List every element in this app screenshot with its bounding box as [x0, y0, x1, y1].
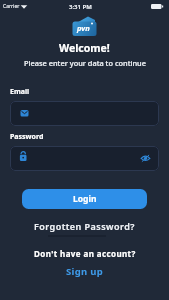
button[interactable] [10, 146, 159, 171]
staticText: Welcome! [59, 41, 110, 55]
button[interactable] [10, 101, 159, 126]
staticText: Password [10, 132, 44, 142]
staticText: 3:31 PM [69, 3, 92, 11]
staticText: Email [10, 87, 30, 97]
staticText: Please enter your data to continue [24, 58, 146, 68]
button[interactable]: Sign up [66, 265, 104, 278]
staticText: Don't have an account? [34, 248, 136, 259]
button[interactable]: Forgotten Password? [34, 220, 135, 232]
staticText: Login [73, 193, 97, 205]
button[interactable] [138, 147, 158, 170]
staticText: Carrier [3, 3, 20, 10]
button[interactable]: Login [22, 189, 147, 209]
staticText: pvn [77, 23, 90, 33]
